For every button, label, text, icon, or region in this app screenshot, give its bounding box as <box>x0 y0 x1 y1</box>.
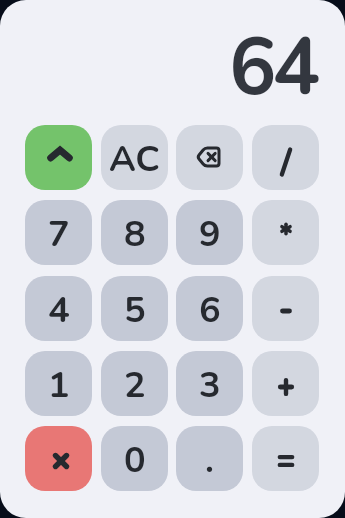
button[interactable] <box>252 276 319 341</box>
button[interactable]: 9 <box>176 200 243 265</box>
button[interactable] <box>252 125 319 190</box>
button[interactable]: 5 <box>101 276 168 341</box>
staticText: 7 <box>48 210 70 259</box>
button[interactable] <box>252 426 319 491</box>
staticText: 8 <box>124 210 146 259</box>
button[interactable]: 0 <box>101 426 168 491</box>
staticText: 9 <box>199 210 221 259</box>
staticText: AC <box>109 135 160 184</box>
button[interactable] <box>252 200 319 265</box>
staticText: 3 <box>199 361 221 410</box>
staticText: 5 <box>124 286 146 335</box>
button[interactable]: 4 <box>25 276 92 341</box>
button[interactable]: . <box>176 426 243 491</box>
button[interactable]: 7 <box>25 200 92 265</box>
staticText: 1 <box>48 361 70 410</box>
staticText: 6 <box>199 286 221 335</box>
staticText: . <box>205 436 214 485</box>
staticText: 64 <box>229 14 316 122</box>
button[interactable] <box>252 351 319 416</box>
button[interactable] <box>176 125 243 190</box>
button[interactable] <box>25 125 92 190</box>
button[interactable]: 6 <box>176 276 243 341</box>
button[interactable]: AC <box>101 125 168 190</box>
staticText: 2 <box>124 361 146 410</box>
staticText: 4 <box>48 286 70 335</box>
staticText: 0 <box>124 436 146 485</box>
button[interactable] <box>25 426 92 491</box>
button[interactable]: 3 <box>176 351 243 416</box>
button[interactable]: 8 <box>101 200 168 265</box>
button[interactable]: 2 <box>101 351 168 416</box>
button[interactable]: 1 <box>25 351 92 416</box>
